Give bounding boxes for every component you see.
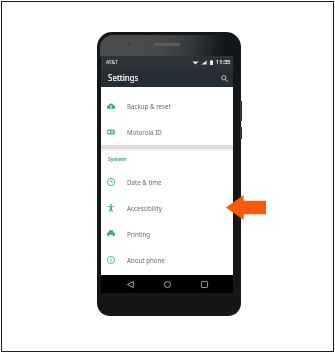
staticText: Date & time <box>127 178 162 186</box>
button[interactable]: Back <box>118 275 142 293</box>
staticText: Backup & reset <box>127 102 171 110</box>
button[interactable]: Date & time <box>101 169 233 195</box>
staticText: Printing <box>127 230 151 238</box>
staticText: Settings <box>108 72 139 83</box>
staticText: AT&T <box>106 59 118 66</box>
button[interactable]: Home <box>155 275 179 293</box>
staticText: About phone <box>127 256 165 264</box>
button[interactable]: About phone <box>101 247 233 273</box>
staticText: 11:35 <box>216 58 231 66</box>
button[interactable]: Motorola ID <box>101 119 233 145</box>
button[interactable]: Recents <box>192 275 216 293</box>
button[interactable]: Search <box>218 72 230 84</box>
button[interactable]: Accessibility <box>101 195 233 221</box>
button[interactable]: Settings <box>101 68 233 87</box>
staticText: Accessibility <box>127 204 162 212</box>
staticText: System <box>108 156 127 163</box>
button[interactable]: Printing <box>101 221 233 247</box>
button[interactable]: Backup & reset <box>101 93 233 119</box>
staticText: Motorola ID <box>127 128 162 136</box>
